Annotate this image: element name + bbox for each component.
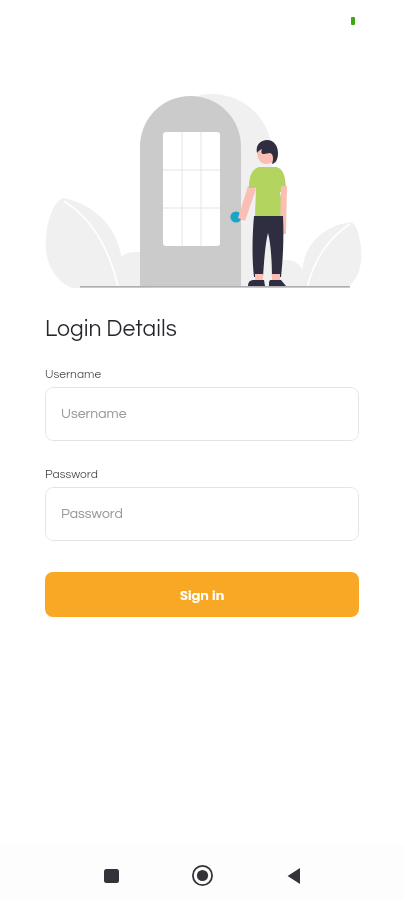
button[interactable]: Username bbox=[45, 387, 359, 441]
staticText: Sign in bbox=[180, 586, 225, 604]
button[interactable]: Home bbox=[175, 854, 230, 897]
staticText: Login Details bbox=[45, 317, 177, 341]
button[interactable]: Back bbox=[266, 854, 321, 897]
staticText: Password bbox=[61, 507, 123, 521]
button[interactable]: Password bbox=[45, 487, 359, 541]
staticText: Username bbox=[45, 368, 102, 380]
button[interactable]: Recent apps bbox=[84, 854, 139, 897]
staticText: Username bbox=[61, 407, 127, 421]
button[interactable]: Sign in bbox=[45, 572, 359, 617]
staticText: Password bbox=[45, 468, 98, 480]
